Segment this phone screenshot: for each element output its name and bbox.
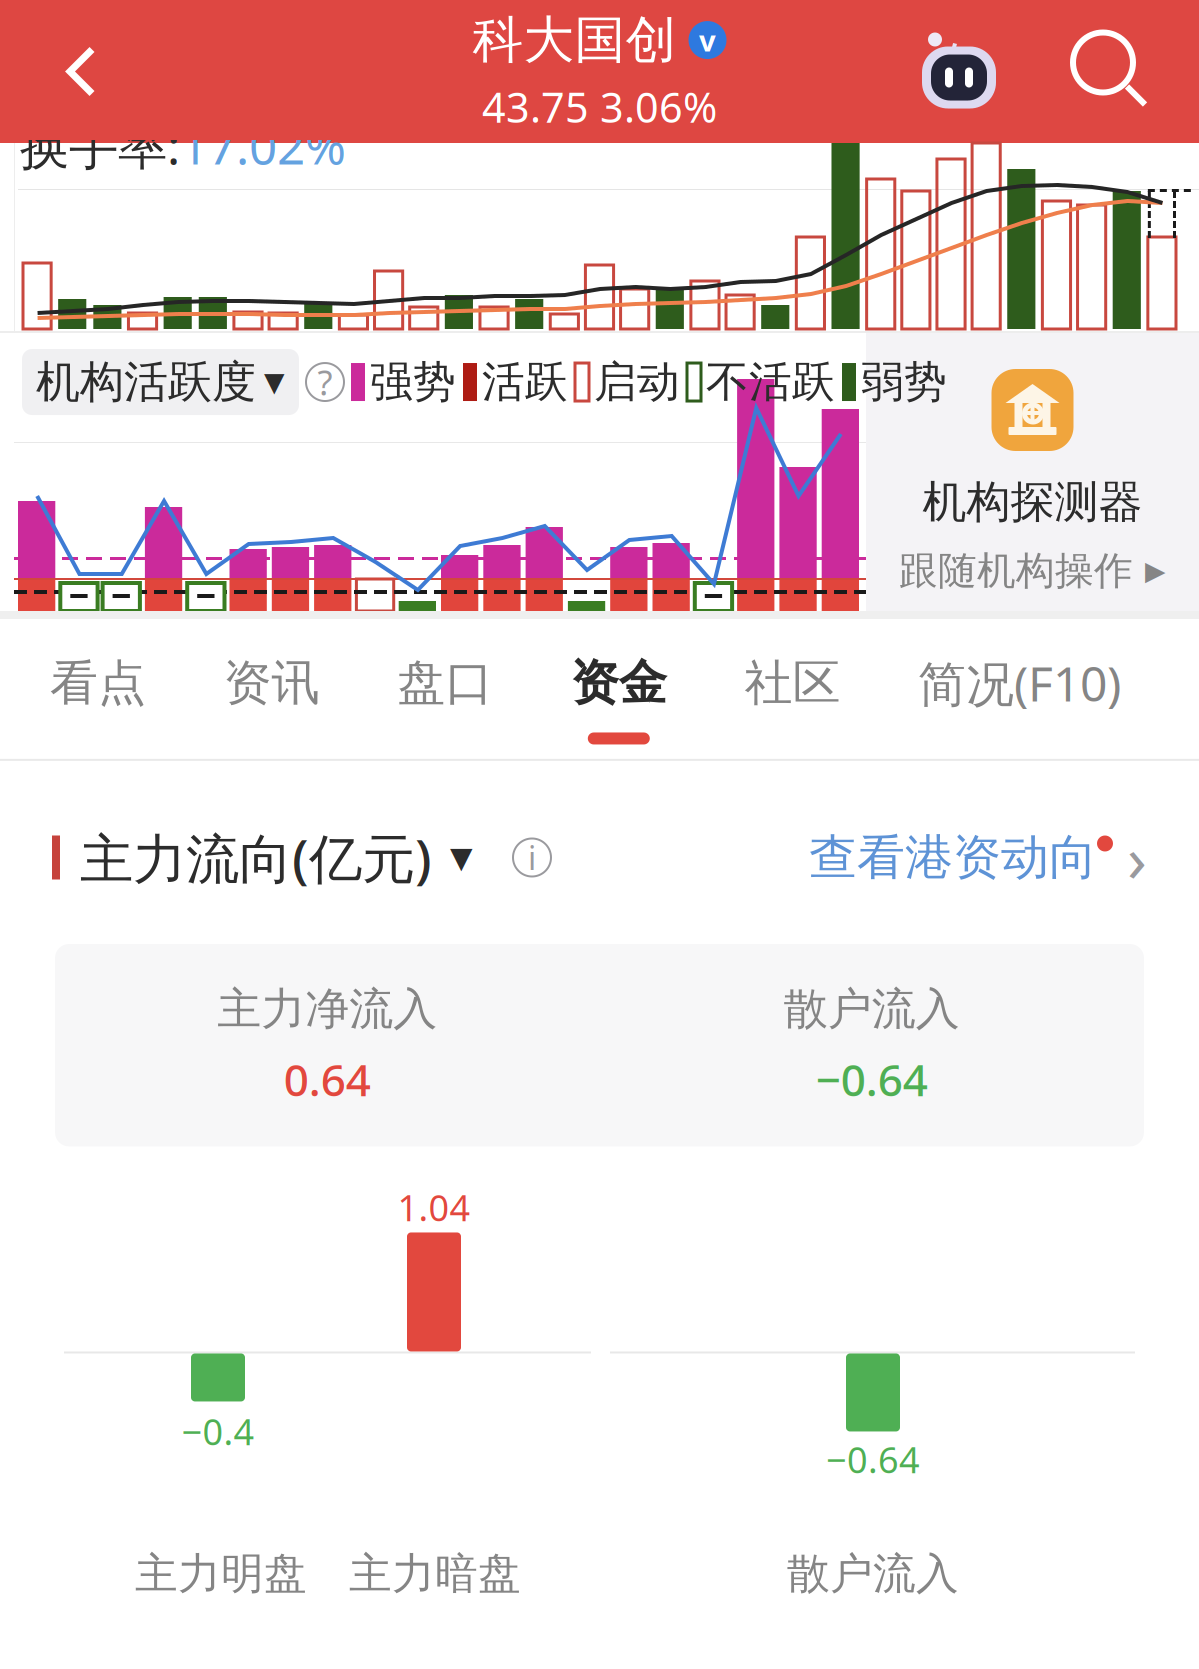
staticText: ▼ <box>450 841 473 874</box>
staticText: 活跃 <box>482 356 568 408</box>
staticText: 机构探测器 <box>922 475 1142 529</box>
staticText: 盘口 <box>397 653 493 712</box>
staticText: 资金 <box>571 653 667 712</box>
staticText: 1.04 <box>397 1183 470 1231</box>
staticText: 查看港资动向 <box>809 828 1097 887</box>
button[interactable]: 社区 <box>744 615 840 756</box>
button[interactable]: 资金 <box>571 615 667 756</box>
staticText: −0.64 <box>816 1050 928 1108</box>
staticText: 强势 <box>370 356 456 408</box>
staticText: ? <box>317 359 332 405</box>
staticText: 主力净流入 <box>217 982 437 1036</box>
staticText: 主力流向(亿元) <box>80 822 432 893</box>
staticText: −0.64 <box>826 1435 920 1483</box>
button[interactable]: 资讯 <box>224 615 320 756</box>
staticText: 看点 <box>50 653 146 712</box>
button[interactable]: 查看港资动向 <box>809 815 1147 900</box>
staticText: 简况(F10) <box>918 651 1121 715</box>
staticText: −0.4 <box>181 1407 254 1455</box>
staticText: i <box>528 836 536 879</box>
staticText: 机构活跃度 <box>36 355 256 409</box>
staticText: 主力暗盘 <box>349 1547 521 1600</box>
staticText: 社区 <box>744 653 840 712</box>
button[interactable]: Search <box>1063 32 1199 110</box>
staticText: 换手率: <box>20 112 180 178</box>
button[interactable]: 看点 <box>50 615 146 756</box>
staticText: 17.02% <box>180 112 346 178</box>
button[interactable]: 盘口 <box>397 615 493 756</box>
staticText: 启动 <box>594 356 680 408</box>
staticText: › <box>1127 815 1147 900</box>
staticText: 散户流入 <box>787 1547 959 1600</box>
button[interactable]: 机构探测器 <box>866 333 1199 611</box>
staticText: 不活跃 <box>706 356 835 408</box>
staticText: 43.75 3.06% <box>482 79 717 134</box>
staticText: ▶ <box>1145 556 1166 586</box>
staticText: 跟随机构操作 <box>899 547 1133 594</box>
staticText: 资讯 <box>224 653 320 712</box>
staticText: 散户流入 <box>784 982 960 1036</box>
button[interactable]: Back <box>0 33 132 109</box>
button[interactable]: AI assistant <box>911 23 1007 119</box>
staticText: ▼ <box>264 367 285 397</box>
staticText: v <box>699 21 716 60</box>
staticText: 弱势 <box>861 356 947 408</box>
staticText: 0.64 <box>284 1050 371 1108</box>
button[interactable]: 简况(F10) <box>918 613 1121 759</box>
staticText: 主力明盘 <box>135 1547 307 1600</box>
staticText: 科大国创 <box>472 9 676 71</box>
